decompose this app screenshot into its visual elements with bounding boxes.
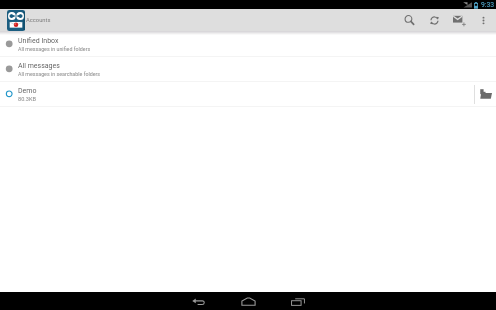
button[interactable]: All messages [0, 57, 496, 82]
staticText: 80.3KB [18, 96, 36, 103]
button[interactable]: Unified Inbox [0, 32, 496, 57]
staticText: 9:33 [481, 1, 495, 9]
button[interactable]: More options [470, 9, 496, 31]
staticText: Accounts [26, 17, 51, 24]
button[interactable]: Search [396, 9, 421, 31]
button[interactable]: Recent apps [281, 292, 315, 310]
staticText: All messages [18, 62, 60, 70]
button[interactable]: Back [182, 292, 216, 310]
staticText: Unified Inbox [18, 37, 59, 45]
button[interactable]: Home [231, 292, 265, 310]
staticText: All messages in searchable folders [18, 71, 101, 77]
button[interactable]: Refresh [421, 9, 446, 31]
button[interactable]: Accounts [0, 9, 51, 31]
staticText: All messages in unified folders [18, 46, 91, 52]
staticText: Demo [18, 87, 37, 95]
button[interactable]: Demo [0, 82, 474, 106]
button[interactable]: Folders [475, 82, 496, 106]
button[interactable]: Compose message [446, 9, 470, 31]
